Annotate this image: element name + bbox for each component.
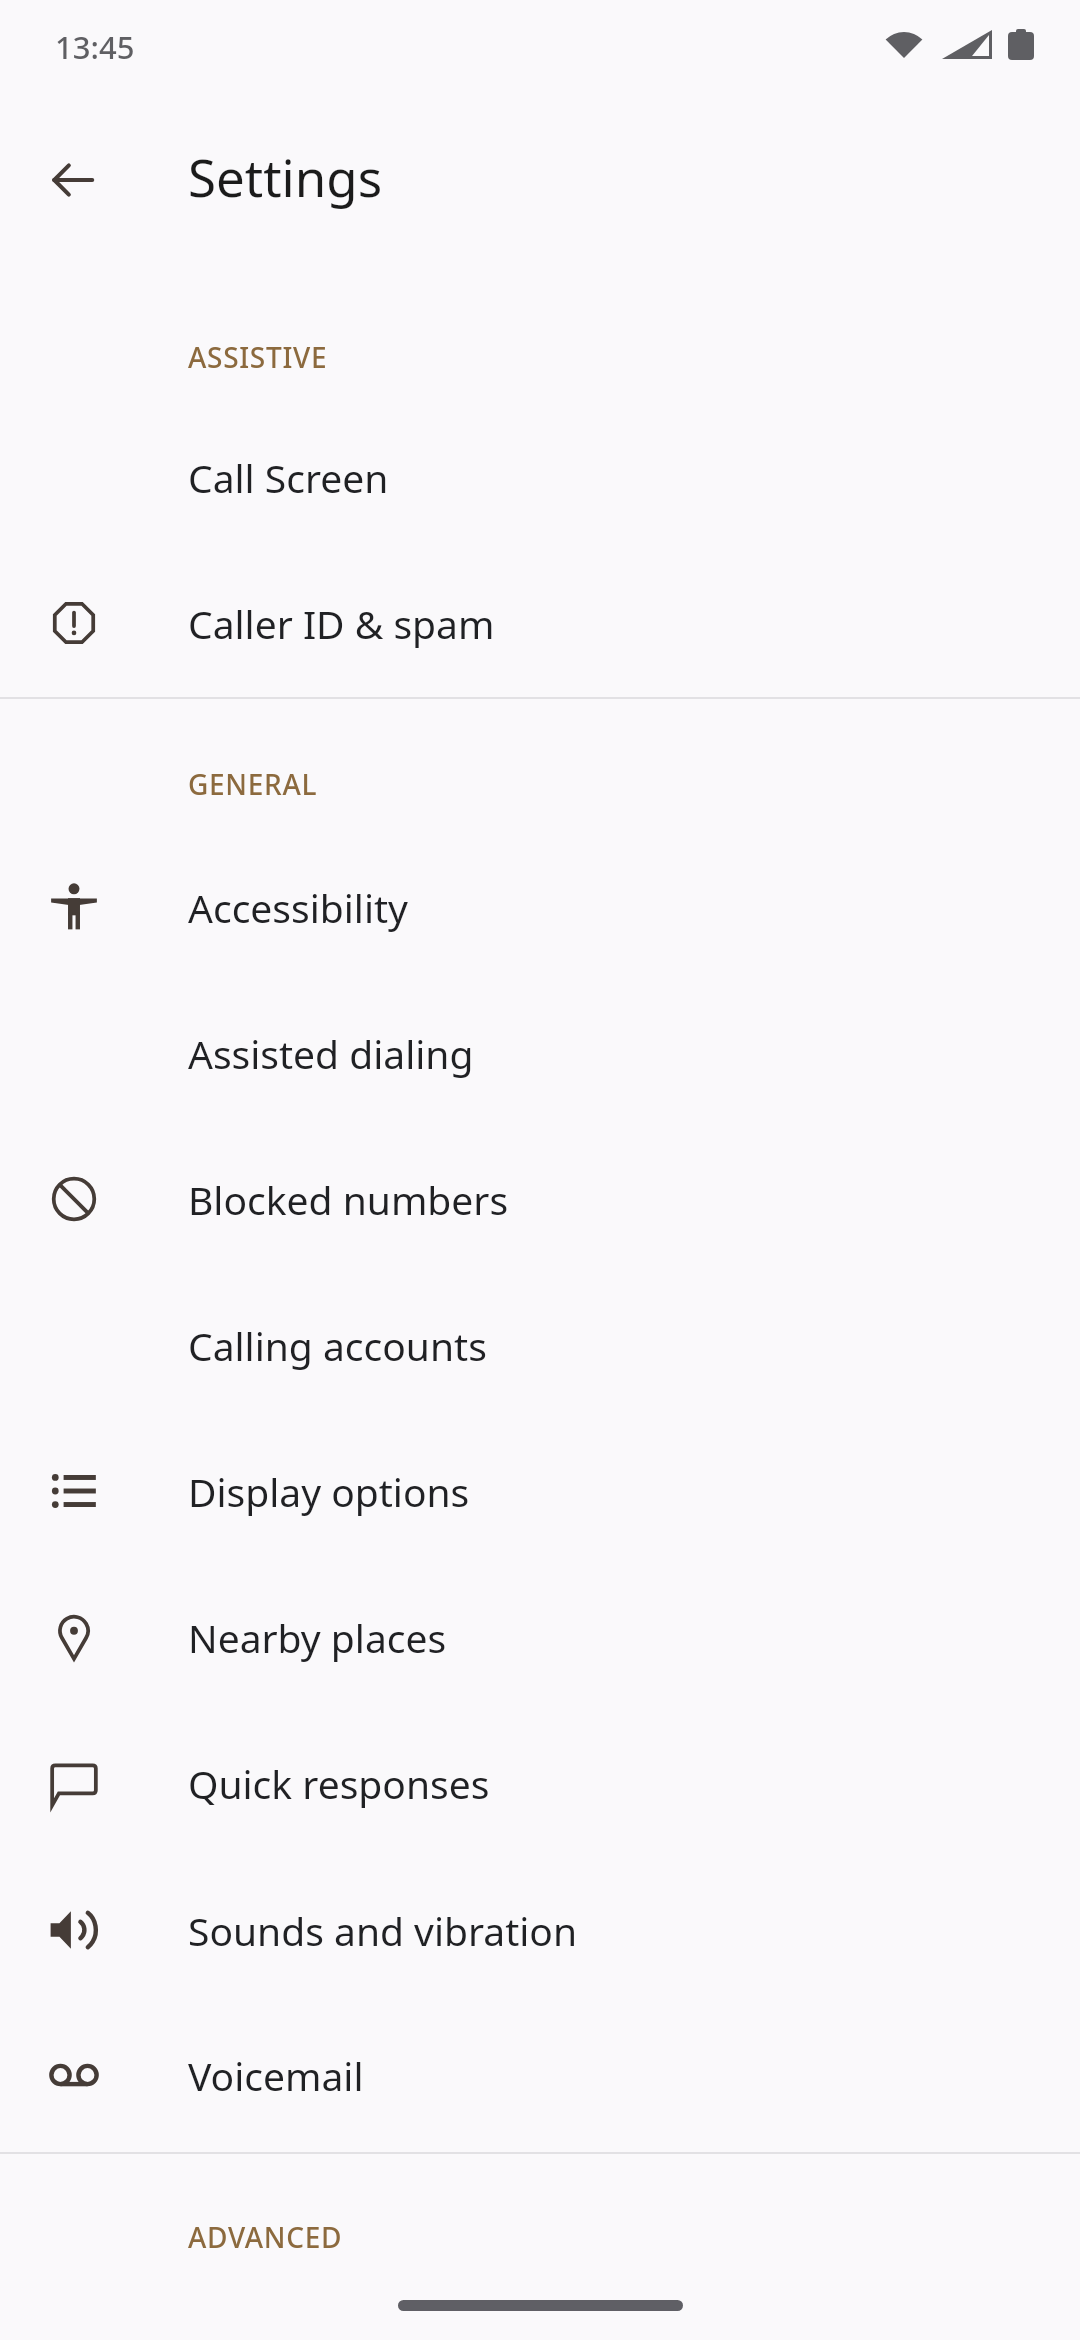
staticText: Voicemail (188, 2049, 364, 2102)
staticText: Settings (188, 142, 383, 211)
button[interactable]: Back (25, 132, 121, 228)
staticText: Blocked numbers (188, 1173, 509, 1226)
staticText: Assisted dialing (188, 1027, 474, 1080)
button[interactable]: Accessibility (0, 834, 1080, 980)
button[interactable]: Call Screen (0, 404, 1080, 550)
staticText: Nearby places (188, 1611, 447, 1664)
staticText: GENERAL (188, 765, 318, 803)
staticText: Quick responses (188, 1757, 490, 1810)
button[interactable]: Nearby places (0, 1564, 1080, 1710)
staticText: ADVANCED (188, 2218, 343, 2256)
button[interactable]: Display options (0, 1418, 1080, 1564)
staticText: Calling accounts (188, 1319, 487, 1372)
staticText: Accessibility (188, 881, 408, 934)
staticText: Call Screen (188, 451, 389, 504)
staticText: ASSISTIVE (188, 338, 328, 376)
button[interactable]: Caller ID & spam (0, 550, 1080, 696)
button[interactable]: Sounds and vibration (0, 1857, 1080, 2003)
staticText: Sounds and vibration (188, 1904, 578, 1957)
button[interactable]: Blocked numbers (0, 1126, 1080, 1272)
button[interactable]: Calling accounts (0, 1272, 1080, 1418)
staticText: 13:45 (55, 26, 135, 68)
button[interactable]: Voicemail (0, 2002, 1080, 2148)
button[interactable]: Assisted dialing (0, 980, 1080, 1126)
staticText: Caller ID & spam (188, 597, 495, 650)
button[interactable]: Quick responses (0, 1710, 1080, 1856)
staticText: Display options (188, 1465, 470, 1518)
